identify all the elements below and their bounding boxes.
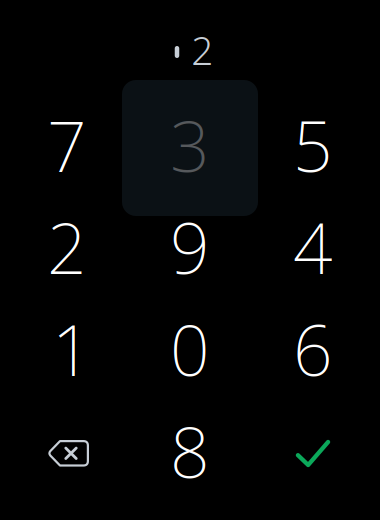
button[interactable]: 2 (5, 196, 128, 298)
staticText: 0 (170, 303, 210, 395)
button[interactable]: Confirm (251, 400, 374, 502)
button[interactable]: 5 (251, 94, 374, 196)
button[interactable]: 9 (128, 196, 251, 298)
staticText: 5 (293, 99, 333, 191)
button[interactable]: 3 (128, 94, 251, 196)
staticText: 1 (52, 303, 92, 395)
staticText: 4 (293, 201, 333, 293)
staticText: 9 (170, 201, 210, 293)
button[interactable]: Delete (5, 400, 128, 502)
staticText: 6 (293, 303, 333, 395)
button[interactable]: 7 (5, 94, 128, 196)
staticText: 2 (47, 201, 87, 293)
staticText: 7 (47, 99, 87, 191)
button[interactable]: 1 (5, 298, 128, 400)
staticText: 3 (170, 99, 210, 191)
button[interactable]: 8 (128, 400, 251, 502)
staticText: 2 (191, 24, 213, 76)
button[interactable]: 4 (251, 196, 374, 298)
staticText: 8 (170, 405, 210, 497)
button[interactable]: 6 (251, 298, 374, 400)
button[interactable]: 0 (128, 298, 251, 400)
